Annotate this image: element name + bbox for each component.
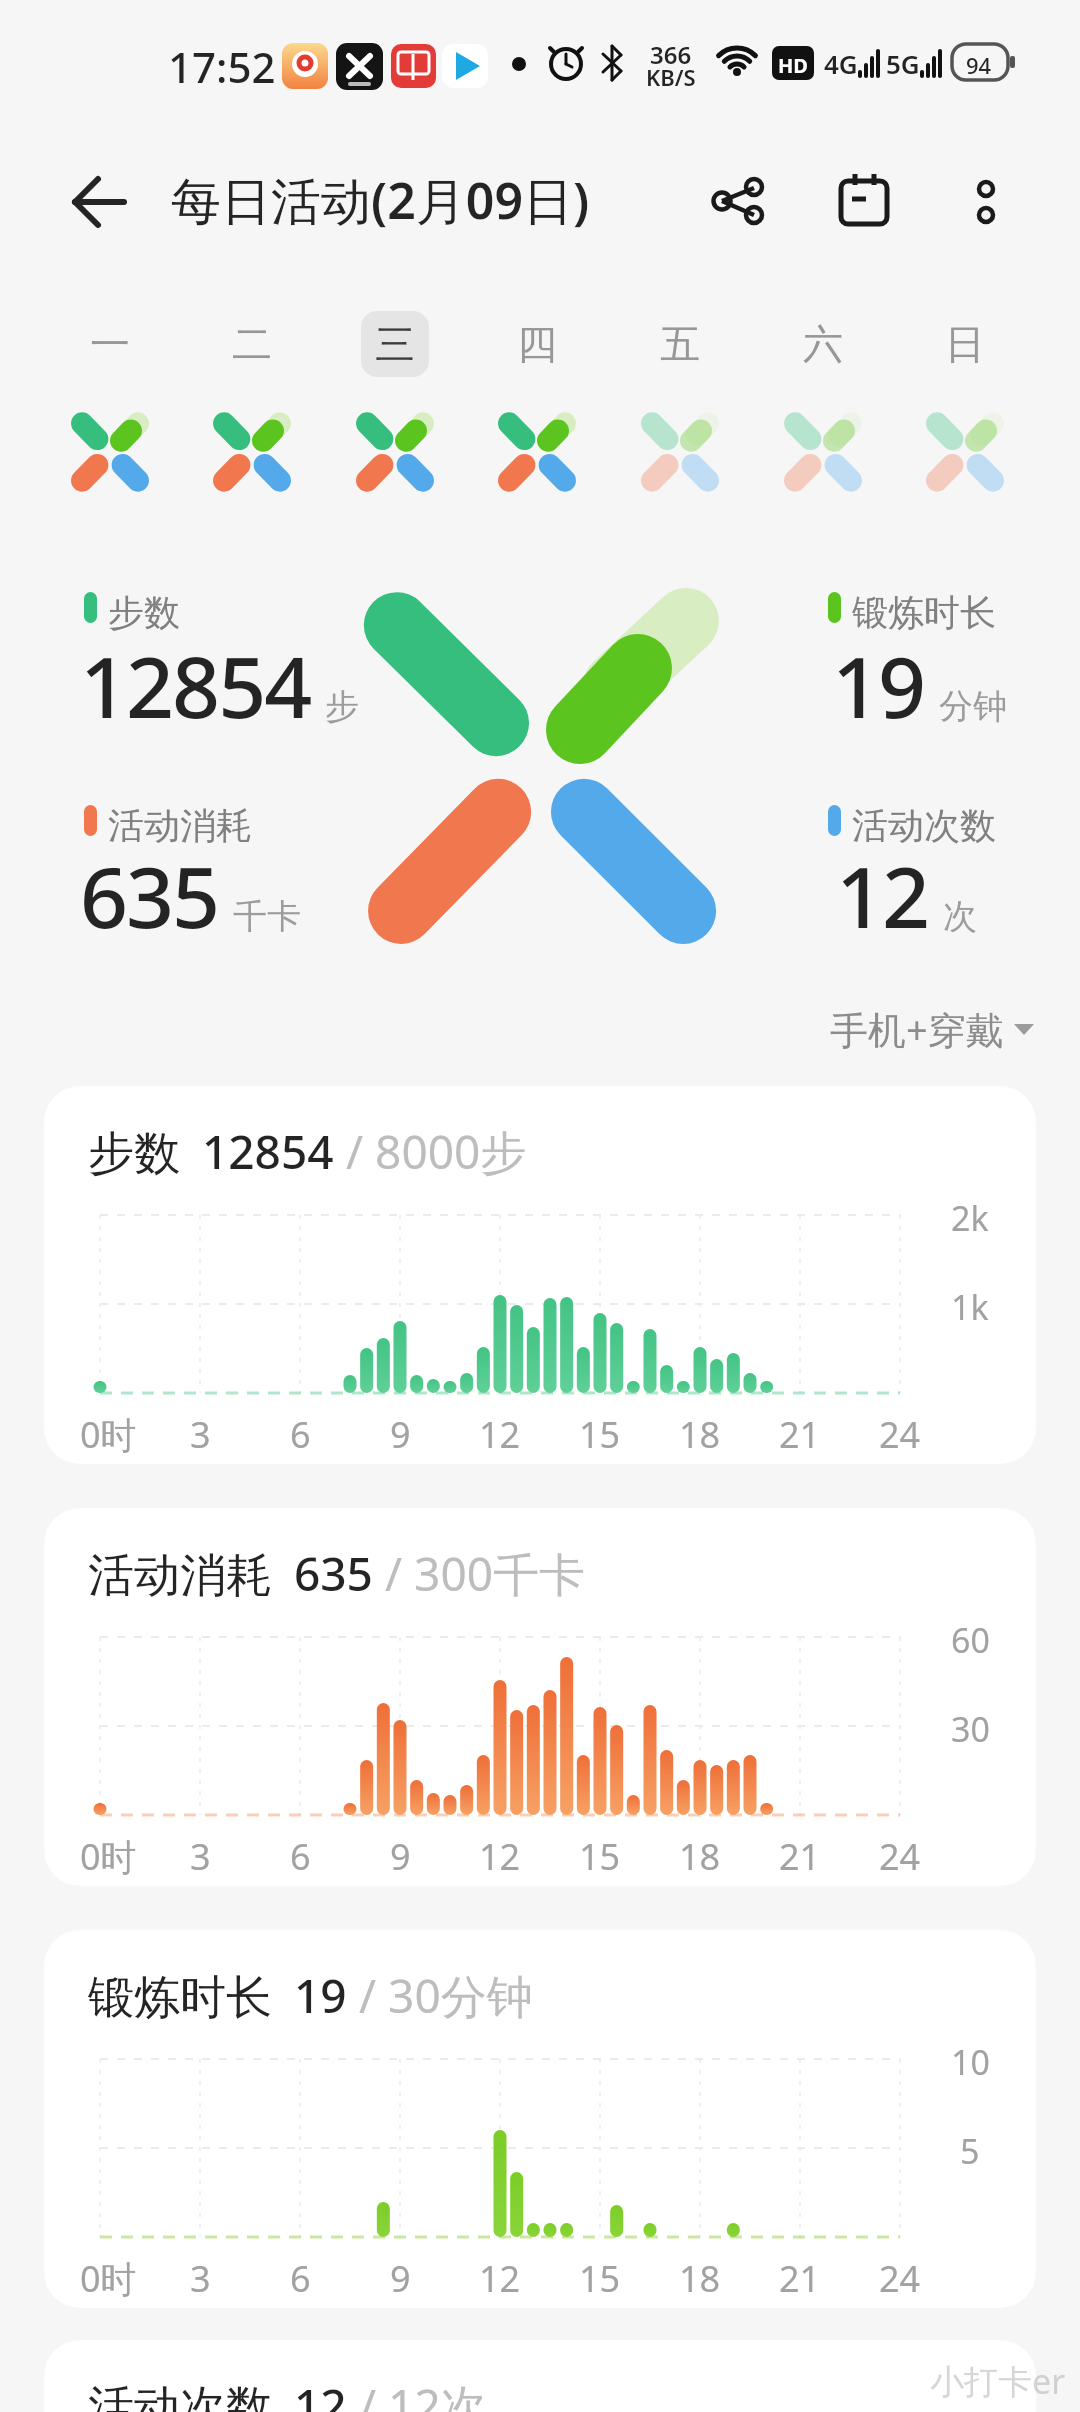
- staticText: 步数: [108, 590, 180, 635]
- staticText: 次: [943, 895, 977, 938]
- button[interactable]: 五: [646, 311, 714, 377]
- staticText: HD: [778, 52, 808, 79]
- staticText: 60: [951, 1617, 990, 1657]
- staticText: 2k: [951, 1195, 989, 1235]
- staticText: 12: [294, 2374, 347, 2412]
- button[interactable]: 三: [361, 311, 429, 377]
- staticText: 19: [832, 628, 925, 742]
- staticText: 17:52: [168, 38, 276, 95]
- button[interactable]: 锻炼时长: [44, 1930, 1036, 2308]
- staticText: 活动次数: [88, 2379, 272, 2412]
- staticText: 21: [779, 1410, 821, 1454]
- staticText: 千卡: [233, 895, 301, 938]
- staticText: 四: [517, 319, 557, 369]
- staticText: 24: [879, 1832, 921, 1876]
- button[interactable]: 一: [76, 311, 144, 377]
- staticText: 366: [650, 38, 692, 71]
- button[interactable]: [700, 165, 776, 235]
- staticText: 每日活动(2月09日): [171, 166, 590, 234]
- button[interactable]: 日: [931, 311, 999, 377]
- staticText: 六: [803, 319, 843, 369]
- button[interactable]: 活动次数: [44, 2340, 1036, 2412]
- staticText: 1k: [951, 1284, 989, 1324]
- staticText: 18: [679, 2254, 721, 2298]
- staticText: 12: [479, 2254, 521, 2298]
- staticText: 手机+穿戴: [830, 1003, 1004, 1055]
- staticText: 小打卡er: [930, 2358, 1066, 2404]
- button[interactable]: 四: [503, 311, 571, 377]
- staticText: 635: [80, 838, 219, 952]
- staticText: 5G: [886, 46, 920, 81]
- staticText: 24: [879, 1410, 921, 1454]
- staticText: 5: [960, 2128, 980, 2168]
- staticText: 分钟: [939, 685, 1007, 728]
- staticText: 15: [579, 1832, 621, 1876]
- staticText: 9: [390, 2254, 411, 2298]
- staticText: 19: [294, 1964, 347, 2027]
- button[interactable]: 六: [789, 311, 857, 377]
- button[interactable]: 手机+穿戴: [830, 1003, 1034, 1055]
- staticText: 15: [579, 2254, 621, 2298]
- staticText: 94: [966, 50, 992, 80]
- staticText: 3: [190, 1410, 211, 1454]
- staticText: 12854: [202, 1120, 334, 1183]
- button[interactable]: [828, 165, 900, 235]
- staticText: 9: [390, 1832, 411, 1876]
- staticText: 0时: [80, 1832, 137, 1876]
- staticText: 4G: [824, 46, 858, 81]
- button[interactable]: 活动消耗: [44, 1508, 1036, 1886]
- staticText: 一: [90, 319, 130, 369]
- button[interactable]: [60, 165, 140, 235]
- staticText: 活动次数: [852, 803, 996, 848]
- staticText: 21: [779, 1832, 821, 1876]
- staticText: 15: [579, 1410, 621, 1454]
- staticText: 活动消耗: [108, 803, 252, 848]
- staticText: 30: [951, 1706, 990, 1746]
- button[interactable]: 二: [218, 311, 286, 377]
- staticText: KB/S: [646, 62, 696, 92]
- staticText: 6: [290, 1410, 311, 1454]
- staticText: 9: [390, 1410, 411, 1454]
- staticText: 3: [190, 2254, 211, 2298]
- staticText: 18: [679, 1410, 721, 1454]
- staticText: 锻炼时长: [852, 590, 996, 635]
- staticText: / 8000步: [346, 1120, 527, 1183]
- staticText: 6: [290, 2254, 311, 2298]
- staticText: 活动消耗: [88, 1547, 272, 1605]
- staticText: 635: [294, 1542, 373, 1605]
- staticText: 五: [660, 319, 700, 369]
- staticText: 18: [679, 1832, 721, 1876]
- staticText: 0时: [80, 2254, 137, 2298]
- staticText: 12: [836, 838, 929, 952]
- staticText: 12854: [80, 628, 311, 742]
- staticText: 12: [479, 1410, 521, 1454]
- staticText: 12: [479, 1832, 521, 1876]
- staticText: 步数: [88, 1125, 180, 1183]
- staticText: 21: [779, 2254, 821, 2298]
- staticText: 日: [945, 319, 985, 369]
- staticText: 锻炼时长: [88, 1969, 272, 2027]
- staticText: / 300千卡: [385, 1542, 586, 1605]
- button[interactable]: 步数: [44, 1086, 1036, 1464]
- staticText: 三: [375, 319, 415, 369]
- staticText: / 30分钟: [359, 1964, 533, 2027]
- staticText: 24: [879, 2254, 921, 2298]
- staticText: 10: [951, 2039, 990, 2079]
- staticText: 步: [325, 685, 359, 728]
- staticText: 6: [290, 1832, 311, 1876]
- staticText: 0时: [80, 1410, 137, 1454]
- staticText: 3: [190, 1832, 211, 1876]
- staticText: / 12次: [359, 2374, 487, 2412]
- staticText: 二: [232, 319, 272, 369]
- button[interactable]: [950, 165, 1022, 235]
